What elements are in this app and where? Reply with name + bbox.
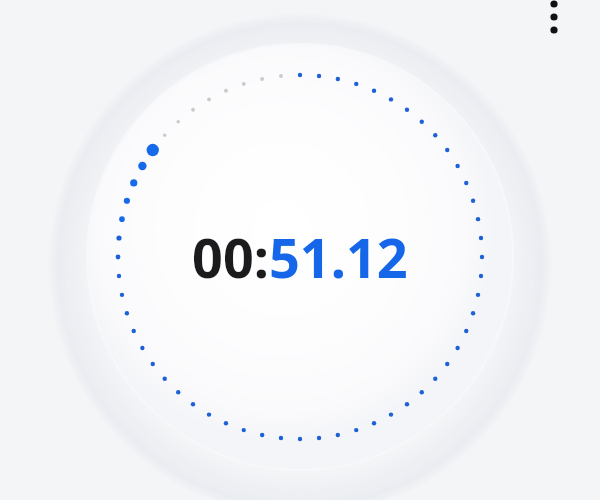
button[interactable]: More options xyxy=(536,0,572,46)
button[interactable]: 00:51.12 xyxy=(0,217,600,297)
staticText: 00:51.12 xyxy=(192,220,408,294)
